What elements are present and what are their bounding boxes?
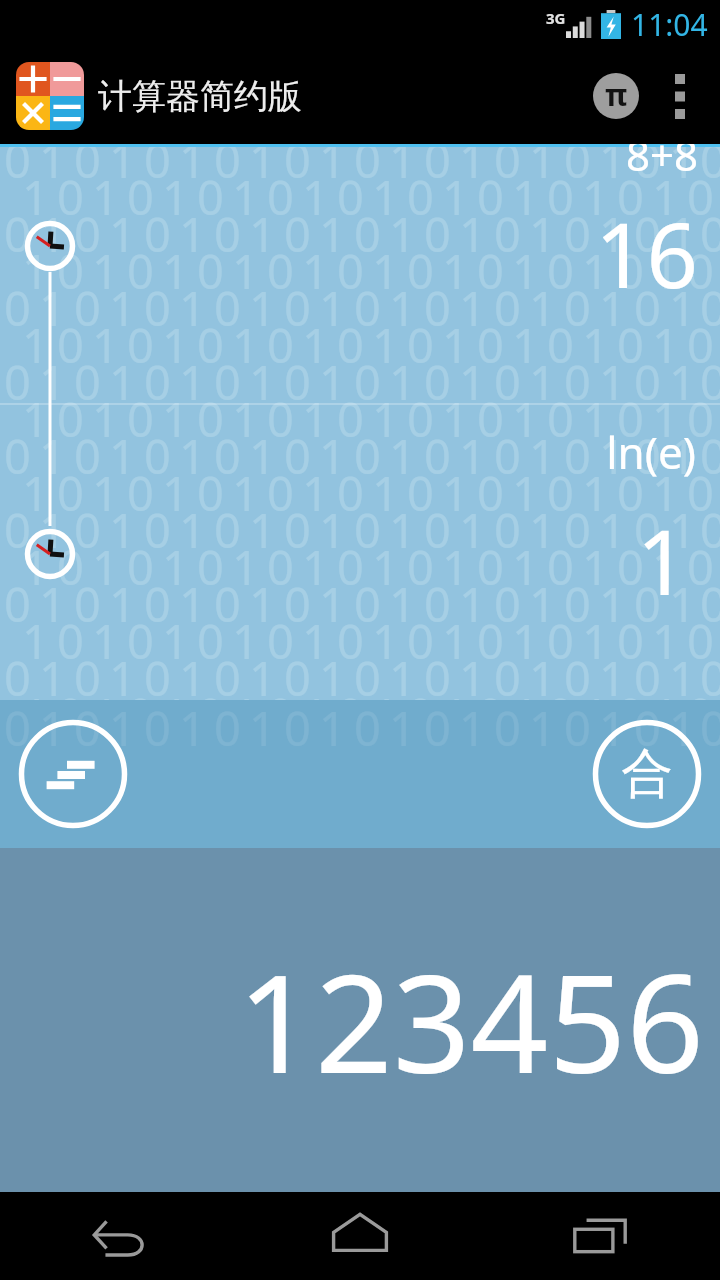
staticText: 1 <box>385 202 420 266</box>
staticText: 1 <box>245 424 280 488</box>
staticText: 0 <box>490 350 525 414</box>
staticText: 1 <box>158 535 193 599</box>
staticText: 1 <box>315 276 350 340</box>
staticText: 1 <box>105 202 140 266</box>
staticText: 0 <box>543 535 578 599</box>
staticText: 1 <box>525 144 560 192</box>
staticText: 0 <box>70 572 105 636</box>
staticText: 0 <box>0 424 35 488</box>
staticText: 0 <box>350 144 385 192</box>
staticText: 1 <box>158 313 193 377</box>
staticText: 0 <box>210 202 245 266</box>
staticText: 1 <box>158 387 193 451</box>
staticText: 1 <box>648 535 683 599</box>
button[interactable]: More options <box>652 48 708 144</box>
staticText: 0 <box>403 535 438 599</box>
staticText: 1 <box>385 276 420 340</box>
staticText: 1 <box>648 387 683 451</box>
staticText: 1 <box>368 683 403 700</box>
staticText: 0 <box>490 276 525 340</box>
staticText: 0 <box>0 646 35 700</box>
staticText: 0 <box>613 535 648 599</box>
staticText: 1 <box>595 572 630 636</box>
staticText: 1 <box>438 239 473 303</box>
staticText: 1 <box>508 461 543 525</box>
staticText: 0 <box>333 461 368 525</box>
staticText: 0 <box>123 165 158 229</box>
staticText: 1 <box>508 683 543 700</box>
staticText: 1 <box>105 424 140 488</box>
staticText: 0 <box>543 461 578 525</box>
button[interactable]: History entry time <box>24 220 76 272</box>
staticText: 0 <box>193 609 228 673</box>
staticText: 0 <box>630 498 665 562</box>
staticText: 0 <box>350 276 385 340</box>
staticText: 1 <box>228 165 263 229</box>
button[interactable]: 123456 <box>0 848 720 1192</box>
staticText: 1 <box>35 572 70 636</box>
staticText: 0 <box>53 535 88 599</box>
staticText: 0 <box>683 387 718 451</box>
staticText: 1 <box>455 700 490 760</box>
staticText: 0 <box>613 313 648 377</box>
staticText: 1 <box>175 700 210 760</box>
staticText: 3G <box>546 8 566 28</box>
staticText: 0 <box>280 276 315 340</box>
staticText: 1 <box>105 498 140 562</box>
staticText: 0 <box>263 165 298 229</box>
staticText: 0 <box>70 498 105 562</box>
staticText: 0 <box>70 350 105 414</box>
staticText: 0 <box>683 165 718 229</box>
staticText: 0 <box>683 461 718 525</box>
button[interactable]: Home <box>240 1192 480 1280</box>
staticText: 0 <box>140 144 175 192</box>
staticText: 0 <box>420 572 455 636</box>
staticText: 0 <box>0 498 35 562</box>
staticText: 1 <box>508 165 543 229</box>
button[interactable]: Combine results <box>592 719 702 829</box>
staticText: 1 <box>665 144 700 192</box>
staticText: 1 <box>88 165 123 229</box>
staticText: 1 <box>455 202 490 266</box>
staticText: 0 <box>560 700 595 760</box>
staticText: 0 <box>280 424 315 488</box>
staticText: 1 <box>315 572 350 636</box>
staticText: 1 <box>525 202 560 266</box>
staticText: 1 <box>595 700 630 760</box>
staticText: 0 <box>420 700 455 760</box>
button[interactable]: History entry time <box>24 528 76 580</box>
staticText: 0 <box>123 461 158 525</box>
staticText: 1 <box>578 461 613 525</box>
staticText: 1 <box>525 424 560 488</box>
staticText: 1 <box>665 202 700 266</box>
button[interactable]: Back <box>0 1192 240 1280</box>
staticText: 0 <box>123 313 158 377</box>
staticText: 0 <box>280 700 315 760</box>
staticText: 1 <box>718 535 720 599</box>
staticText: 1 <box>665 350 700 414</box>
staticText: 0 <box>560 276 595 340</box>
staticText: 0 <box>420 350 455 414</box>
staticText: 0 <box>473 461 508 525</box>
button[interactable]: Pi constant <box>580 48 652 144</box>
staticText: 1 <box>315 144 350 192</box>
staticText: 0 <box>613 387 648 451</box>
button[interactable]: Recent apps <box>480 1192 720 1280</box>
staticText: 0 <box>560 144 595 192</box>
staticText: 0 <box>700 350 720 414</box>
staticText: 1 <box>105 276 140 340</box>
staticText: 0 <box>210 646 245 700</box>
staticText: 1 <box>578 165 613 229</box>
staticText: 1 <box>438 609 473 673</box>
staticText: 1 <box>595 276 630 340</box>
staticText: 1 <box>228 683 263 700</box>
staticText: 0 <box>560 424 595 488</box>
staticText: 1 <box>385 350 420 414</box>
staticText: 1 <box>18 609 53 673</box>
staticText: 1 <box>228 609 263 673</box>
staticText: 1 <box>88 461 123 525</box>
staticText: 0 <box>473 239 508 303</box>
button[interactable]: Show history list <box>18 719 128 829</box>
staticText: 1 <box>315 700 350 760</box>
staticText: 1 <box>158 165 193 229</box>
